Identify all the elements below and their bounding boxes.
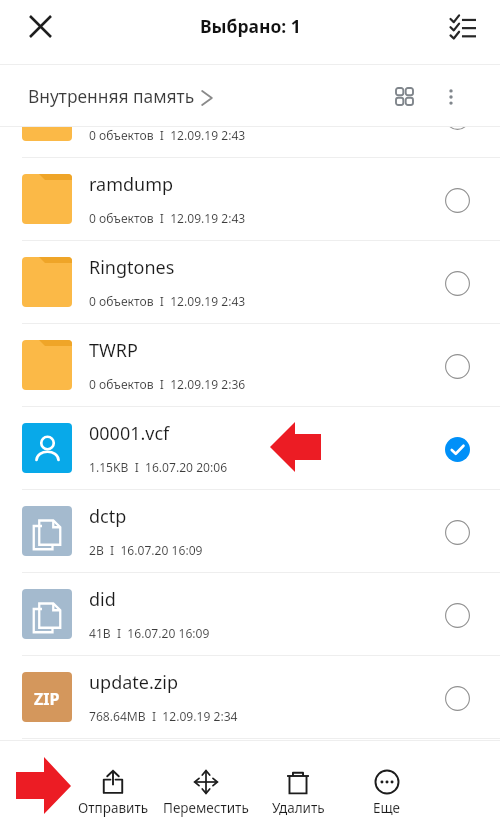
staticText: did	[89, 587, 116, 612]
staticText: Ringtones	[89, 255, 175, 280]
staticText: Внутренняя память	[28, 84, 195, 108]
staticText: Выбрано: 1	[200, 14, 301, 38]
staticText: 00001.vcf	[89, 421, 170, 446]
button[interactable]: Внутренняя память	[28, 84, 218, 108]
staticText: dctp	[89, 504, 127, 529]
staticText: Отправить	[78, 799, 149, 817]
button[interactable]: Grid view	[382, 77, 426, 121]
button[interactable]: Close	[16, 2, 64, 50]
button[interactable]: Еще	[341, 740, 433, 828]
button[interactable]: Переместить	[160, 740, 252, 828]
staticText: TWRP	[89, 338, 138, 363]
button[interactable]: Download	[0, 127, 500, 158]
staticText: 0 объектов I 12.09.19 2:43	[89, 127, 246, 143]
button[interactable]: Select all	[439, 4, 487, 52]
staticText: Еще	[373, 799, 401, 817]
button[interactable]: ramdump	[0, 158, 500, 241]
button[interactable]: ZIP	[0, 656, 500, 739]
staticText: Удалить	[272, 799, 325, 817]
button[interactable]: dctp	[0, 490, 500, 573]
staticText: 1.15KB I 16.07.20 20:06	[89, 459, 228, 475]
staticText: update.zip	[89, 670, 179, 695]
staticText: ZIP	[34, 688, 60, 710]
staticText: 0 объектов I 12.09.19 2:43	[89, 210, 246, 226]
staticText: 768.64MB I 12.09.19 2:34	[89, 708, 238, 724]
staticText: Переместить	[163, 799, 249, 817]
button[interactable]: Отправить	[67, 740, 159, 828]
button[interactable]: Ringtones	[0, 241, 500, 324]
staticText: 2B I 16.07.20 16:09	[89, 542, 203, 558]
button[interactable]: More options	[429, 77, 473, 121]
staticText: 0 объектов I 12.09.19 2:36	[89, 376, 246, 392]
staticText: ramdump	[89, 172, 174, 197]
staticText: 41B I 16.07.20 16:09	[89, 625, 210, 641]
staticText: 0 объектов I 12.09.19 2:43	[89, 293, 246, 309]
button[interactable]: TWRP	[0, 324, 500, 407]
button[interactable]: 00001.vcf	[0, 407, 500, 490]
button[interactable]: Удалить	[252, 740, 344, 828]
button[interactable]: did	[0, 573, 500, 656]
